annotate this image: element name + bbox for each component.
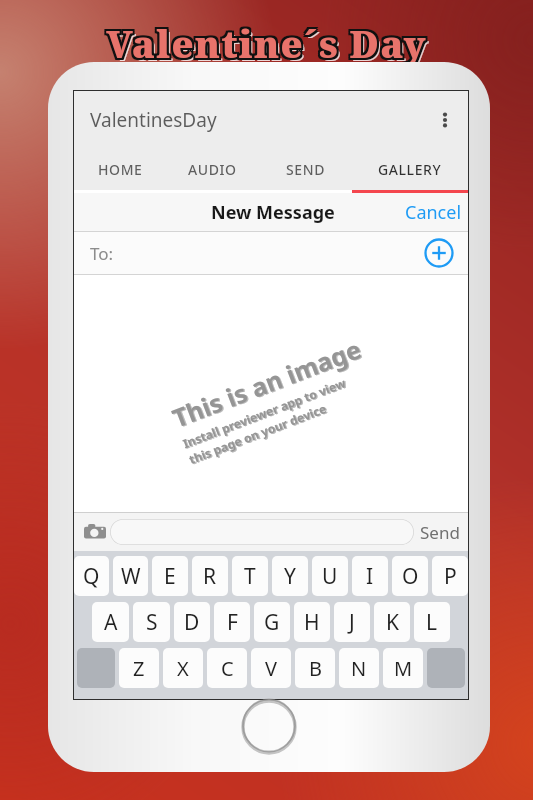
button[interactable]: Add contact [424,238,454,268]
button[interactable]: Z [119,648,159,688]
staticText: To: [90,242,114,265]
button[interactable]: G [254,602,290,642]
staticText: GALLERY [378,160,442,179]
staticText: D [184,608,200,637]
button[interactable]: N [339,648,379,688]
staticText: Valentine´s Day [108,20,429,70]
button[interactable]: X [163,648,203,688]
staticText: This is an image [167,331,366,434]
staticText: A [104,608,118,637]
staticText: Cancel [405,200,462,225]
button[interactable]: Send [420,521,460,544]
staticText: M [394,655,413,682]
button[interactable]: To: [74,232,468,274]
staticText: L [426,608,438,637]
staticText: AUDIO [188,160,237,179]
button[interactable]: E [152,556,188,596]
staticText: T [244,562,256,591]
staticText: Valentine´s Day [106,20,427,70]
button[interactable]: H [294,602,330,642]
staticText: R [203,562,217,591]
staticText: Valentine´s Day [108,18,429,68]
button[interactable]: J [334,602,370,642]
staticText: N [351,655,367,682]
staticText: I [366,562,374,591]
staticText: Valentine´s Day [109,21,430,71]
button[interactable]: C [207,648,247,688]
button[interactable]: Y [272,556,308,596]
button[interactable]: B [295,648,335,688]
staticText: Valentine´s Day [106,16,427,66]
button[interactable]: Home [240,698,298,756]
staticText: W [121,562,141,591]
staticText: B [309,655,322,682]
staticText: Send [420,521,460,544]
button[interactable]: Delete [427,648,465,688]
staticText: This is an image [169,332,368,435]
button[interactable]: M [383,648,423,688]
staticText: Valentine´s Day [108,16,429,66]
staticText: HOME [98,160,143,179]
button[interactable]: P [432,556,468,596]
button[interactable]: Camera [80,517,110,547]
button[interactable] [110,519,414,545]
staticText: J [349,608,355,637]
button[interactable]: V [251,648,291,688]
staticText: Install previewer app to view [182,375,350,452]
button[interactable]: Q [74,556,109,596]
staticText: ValentinesDay [90,107,217,133]
button[interactable]: S [133,602,170,642]
staticText: H [304,608,320,637]
staticText: this page on your device [186,400,328,467]
button[interactable]: More options [428,103,462,137]
staticText: S [146,608,158,637]
staticText: this page on your device [188,400,330,468]
staticText: U [322,562,338,591]
button[interactable]: L [414,602,450,642]
button[interactable]: O [392,556,428,596]
staticText: V [265,655,277,682]
staticText: New Message [211,200,335,225]
button[interactable]: T [232,556,268,596]
button[interactable]: U [312,556,348,596]
button[interactable]: I [352,556,388,596]
staticText: P [444,562,457,591]
button[interactable]: Cancel [405,200,462,225]
button[interactable]: SEND [259,148,352,190]
staticText: G [264,608,280,637]
staticText: Y [284,562,296,591]
button[interactable]: GALLERY [352,148,468,190]
button[interactable]: F [214,602,250,642]
staticText: Valentine´s Day [104,20,425,70]
button[interactable]: HOME [74,148,166,190]
button[interactable]: A [92,602,129,642]
staticText: X [177,655,189,682]
staticText: E [164,562,176,591]
staticText: Q [83,562,100,591]
staticText: F [227,608,238,637]
staticText: Valentine´s Day [104,18,425,68]
button[interactable]: K [374,602,410,642]
button[interactable]: D [174,602,210,642]
staticText: O [402,562,419,591]
staticText: C [221,655,234,682]
button[interactable]: W [113,556,148,596]
staticText: Install previewer app to view [180,374,348,451]
staticText: Valentine´s Day [104,16,425,66]
staticText: SEND [286,160,325,179]
button[interactable]: Shift [77,648,115,688]
staticText: K [386,608,399,637]
staticText: Valentine´s Day [106,18,427,68]
staticText: Z [133,655,145,682]
button[interactable]: R [192,556,228,596]
button[interactable]: AUDIO [166,148,259,190]
